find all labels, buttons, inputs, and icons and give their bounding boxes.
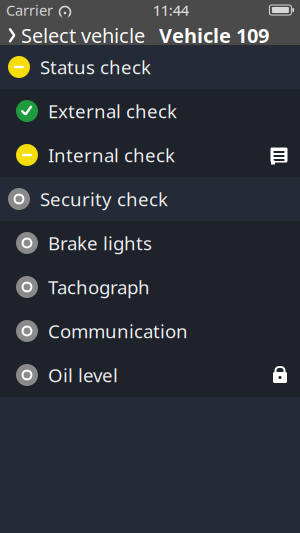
staticText: Communication: [48, 319, 188, 343]
staticText: Oil level: [48, 363, 118, 387]
button[interactable]: Security check: [0, 177, 300, 221]
button[interactable]: Oil level: [0, 353, 300, 397]
staticText: Brake lights: [48, 231, 152, 255]
staticText: Select vehicle: [21, 22, 145, 49]
button[interactable]: Brake lights: [0, 221, 300, 265]
staticText: External check: [48, 99, 177, 123]
button[interactable]: Communication: [0, 309, 300, 353]
staticText: Carrier: [6, 0, 53, 20]
staticText: 11:44: [153, 0, 189, 20]
button[interactable]: External check: [0, 89, 300, 133]
button[interactable]: Internal check: [0, 133, 300, 177]
button[interactable]: Select vehicle: [0, 20, 145, 51]
button[interactable]: Tachograph: [0, 265, 300, 309]
staticText: Vehicle 109: [159, 22, 269, 49]
staticText: Internal check: [48, 143, 175, 167]
staticText: Security check: [40, 187, 168, 211]
staticText: Tachograph: [48, 275, 150, 299]
button[interactable]: Status check: [0, 45, 300, 89]
staticText: Status check: [40, 55, 151, 79]
